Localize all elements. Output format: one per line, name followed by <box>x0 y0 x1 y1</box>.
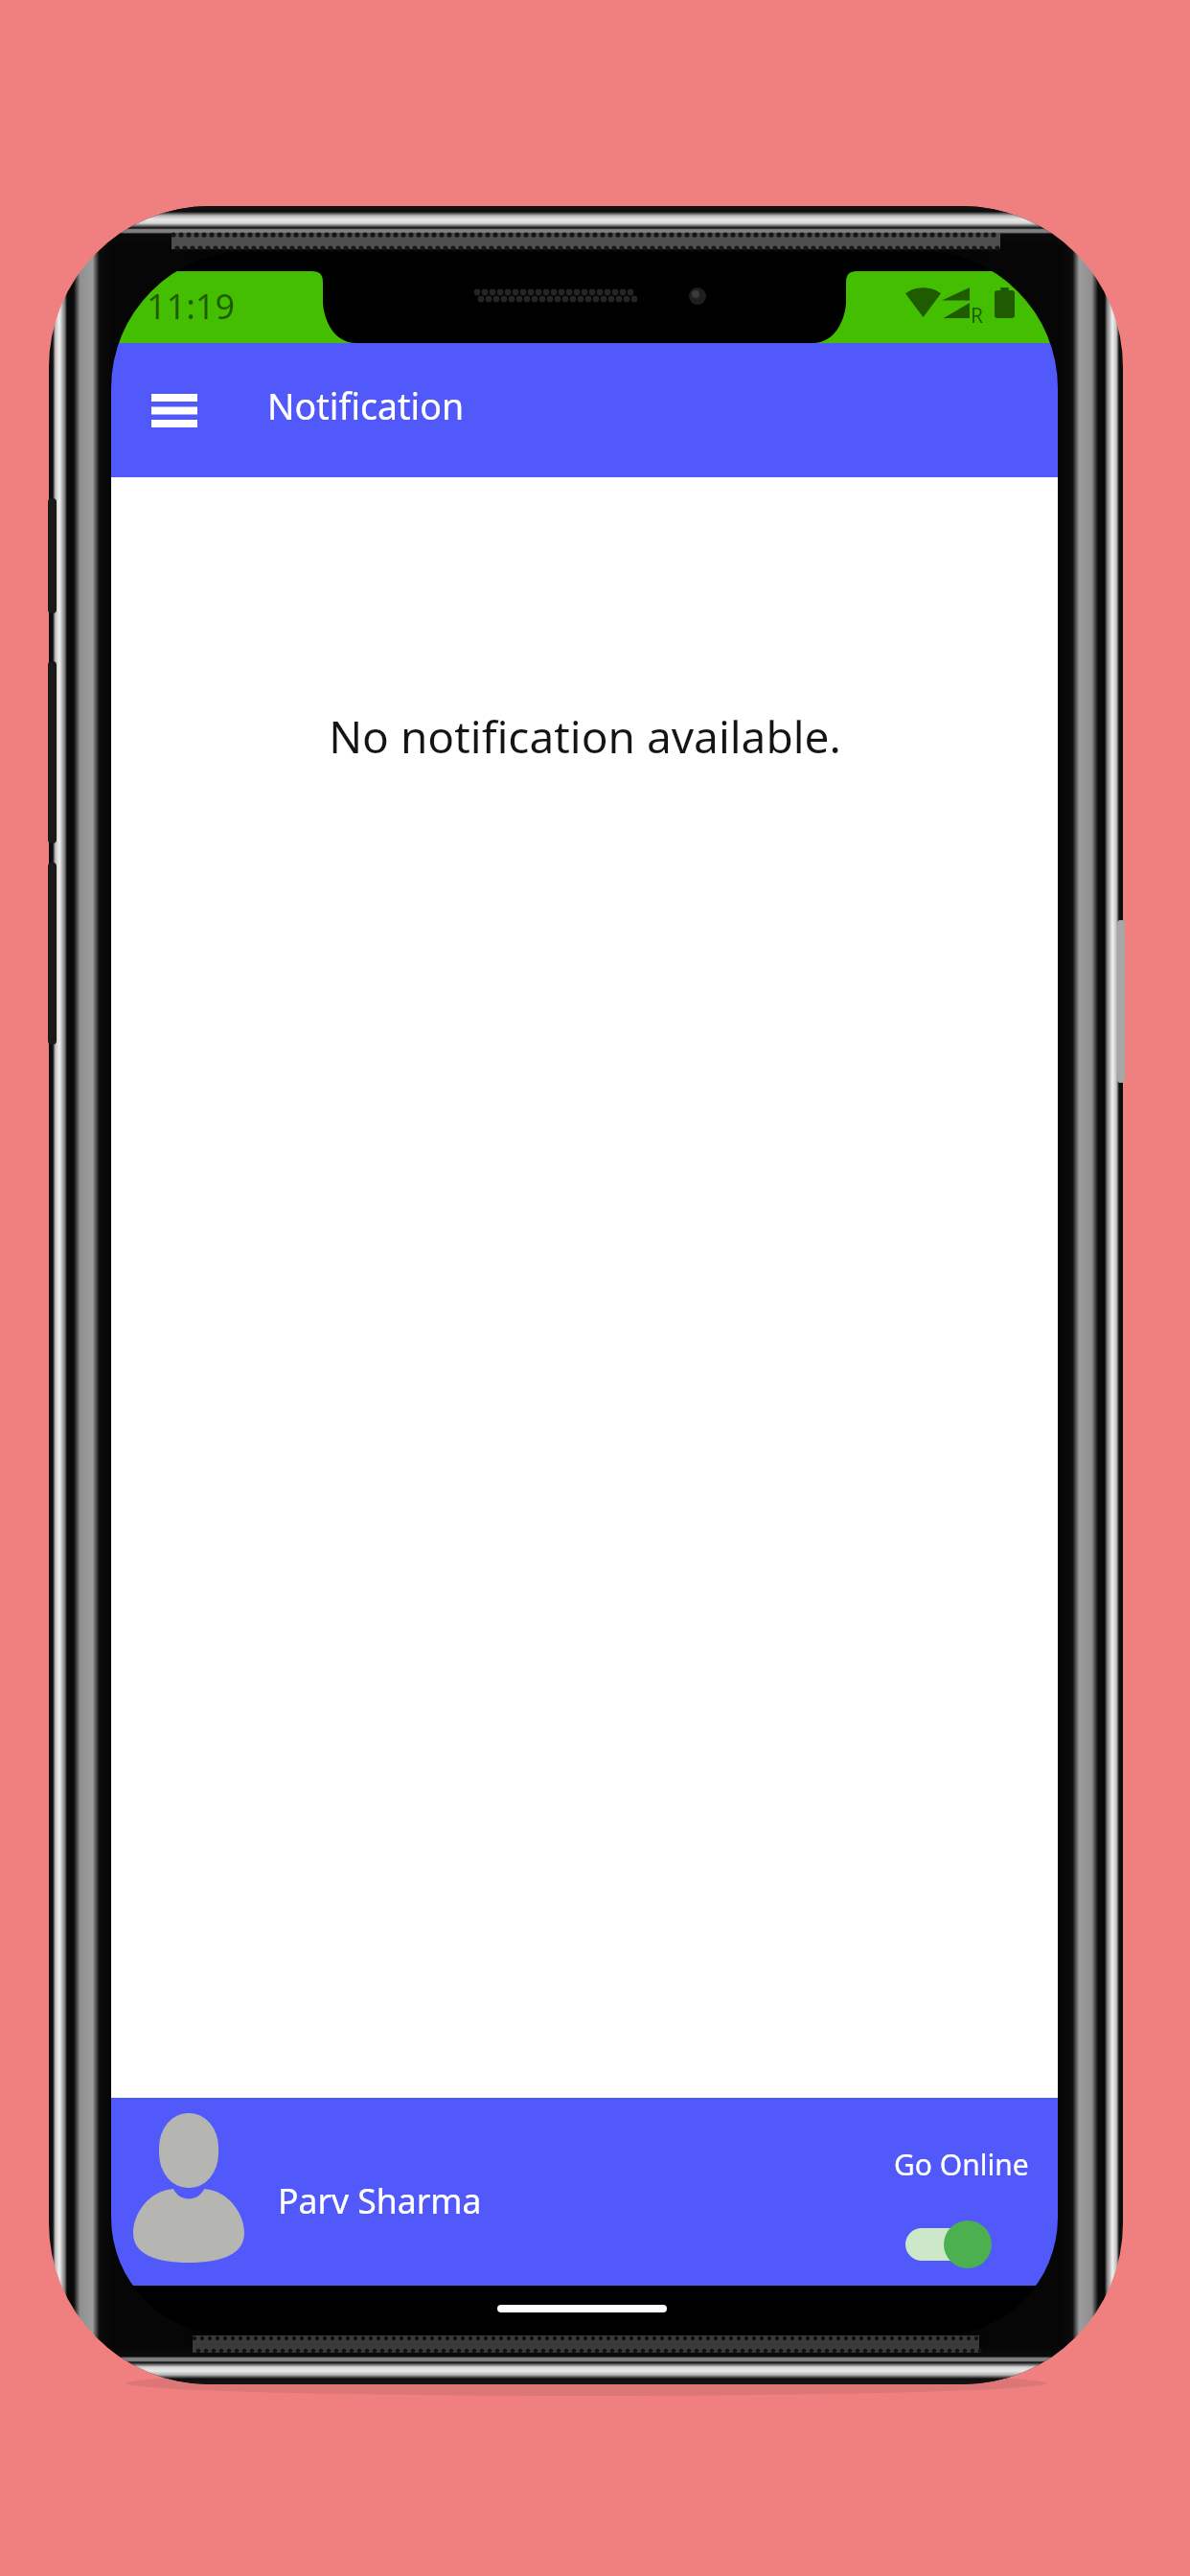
button[interactable]: Parv Sharma <box>121 2098 638 2286</box>
staticText: R <box>971 302 984 330</box>
staticText: No notification available. <box>329 706 841 767</box>
button[interactable]: Go Online toggle, on <box>886 2145 1034 2275</box>
staticText: Go Online <box>894 2145 1029 2184</box>
staticText: 11:19 <box>147 283 236 330</box>
staticText: Notification <box>267 381 465 430</box>
staticText: Parv Sharma <box>278 2177 482 2223</box>
button[interactable]: Open navigation drawer <box>131 357 217 463</box>
